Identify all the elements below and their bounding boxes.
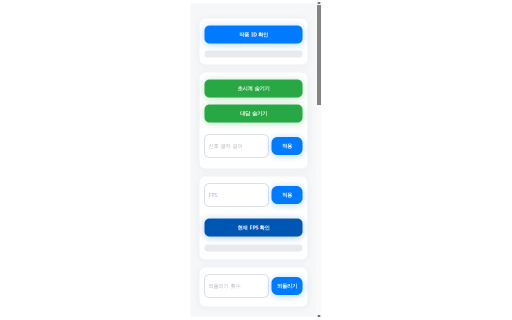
staticText: 작품 ID 확인 <box>239 31 268 38</box>
staticText: 적용 <box>282 143 292 149</box>
button[interactable]: 작품 ID 확인 <box>204 25 302 43</box>
staticText: 되돌리기 횟수 <box>208 283 240 289</box>
button[interactable]: 적용 <box>271 137 302 155</box>
button[interactable]: 되돌리기 <box>271 277 302 295</box>
button[interactable]: 적용 <box>271 186 302 204</box>
staticText: 현재 FPS 확인 <box>237 224 269 231</box>
staticText: 되돌리기 <box>277 283 297 289</box>
staticText: 초시계 숨기기 <box>237 85 269 92</box>
staticText: FPS <box>208 191 217 199</box>
button[interactable]: 현재 FPS 확인 <box>204 218 302 236</box>
staticText: 적용 <box>282 192 292 198</box>
button[interactable]: 대답 숨기기 <box>204 104 302 122</box>
button[interactable]: 초시계 숨기기 <box>204 79 302 97</box>
staticText: 대답 숨기기 <box>240 110 267 117</box>
staticText: 신호 글자 길이 <box>208 143 242 149</box>
